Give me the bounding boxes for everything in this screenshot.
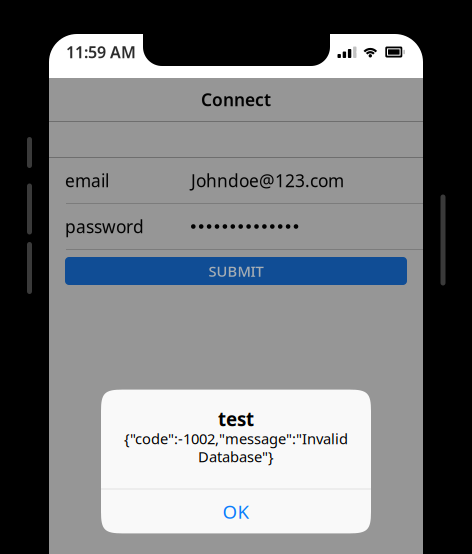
button[interactable]: SUBMIT — [65, 257, 407, 285]
button[interactable]: OK — [101, 489, 371, 533]
staticText: SUBMIT — [208, 261, 263, 281]
staticText: Connect — [201, 88, 271, 111]
staticText: {"code":-1002,"message":"Invalid — [124, 429, 348, 448]
staticText: 11:59 AM — [66, 41, 136, 63]
staticText: OK — [222, 499, 249, 524]
staticText: email — [65, 169, 109, 192]
staticText: password — [65, 215, 144, 238]
staticText: Johndoe@123.com — [191, 169, 344, 192]
staticText: test — [218, 407, 254, 431]
staticText: Database"} — [198, 447, 274, 466]
